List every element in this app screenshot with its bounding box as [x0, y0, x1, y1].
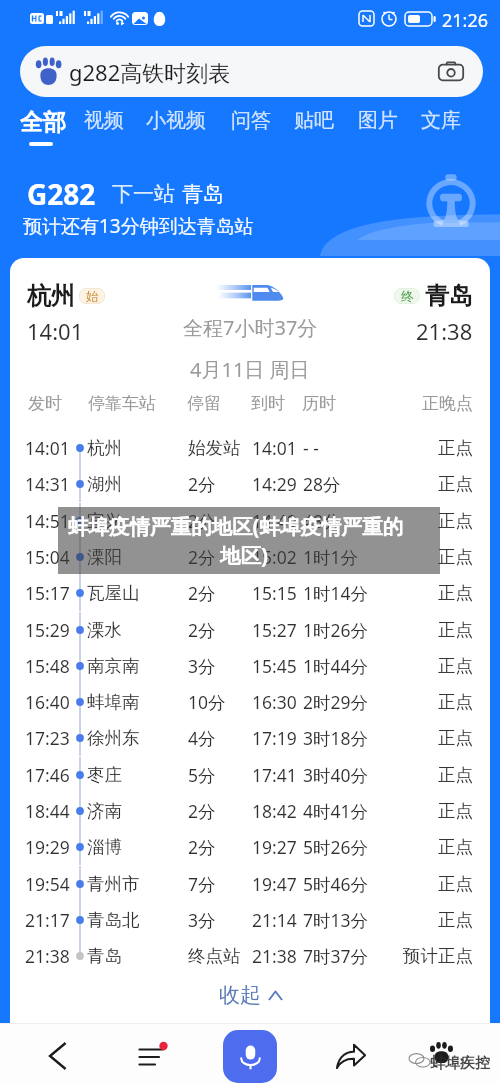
staticText: 21:14 — [252, 908, 297, 932]
staticText: 2分 — [188, 581, 216, 605]
button[interactable]: Visual search — [433, 54, 469, 90]
button[interactable]: 小视频 — [139, 104, 213, 148]
staticText: 4分 — [188, 726, 216, 750]
staticText: 正点 — [438, 437, 473, 459]
button[interactable]: Menu — [124, 1029, 180, 1083]
staticText: 溧阳 — [87, 546, 122, 568]
staticText: 正点 — [438, 836, 473, 858]
button[interactable]: 21:17 — [10, 902, 490, 938]
staticText: 15:02 — [252, 545, 297, 569]
staticText: 始发站 — [188, 437, 241, 459]
staticText: 19:47 — [252, 872, 297, 896]
staticText: 正晚点 — [422, 393, 473, 414]
staticText: 宜兴 — [87, 510, 122, 532]
button[interactable]: 19:54 — [10, 866, 490, 902]
staticText: 3分 — [188, 654, 216, 678]
button[interactable]: 15:04 — [10, 539, 490, 575]
staticText: 济南 — [87, 800, 122, 822]
staticText: 3分 — [188, 908, 216, 932]
staticText: 19:27 — [252, 835, 297, 859]
staticText: 蚌埠疾控 — [430, 1054, 490, 1073]
button[interactable]: 14:01 — [10, 430, 490, 466]
button[interactable]: 贴吧 — [287, 104, 341, 148]
staticText: 枣庄 — [87, 764, 122, 786]
staticText: 正点 — [438, 655, 473, 677]
staticText: 1时44分 — [303, 654, 369, 678]
staticText: 3时18分 — [303, 726, 369, 750]
staticText: 始 — [86, 288, 99, 304]
staticText: 2分 — [188, 472, 216, 496]
button[interactable]: 16:40 — [10, 684, 490, 720]
staticText: 4月11日 周日 — [190, 356, 310, 383]
button[interactable]: Voice search — [223, 1030, 277, 1083]
staticText: 5时26分 — [303, 835, 369, 859]
button[interactable]: Share — [323, 1029, 379, 1083]
staticText: 正点 — [438, 909, 473, 931]
staticText: 2分 — [188, 545, 216, 569]
staticText: 1时1分 — [303, 545, 359, 569]
staticText: 正点 — [438, 764, 473, 786]
staticText: 2时29分 — [303, 690, 369, 714]
button[interactable]: g282高铁时刻表 — [20, 46, 483, 97]
staticText: 15:48 — [25, 654, 70, 678]
staticText: 正点 — [438, 582, 473, 604]
button[interactable]: 14:31 — [10, 466, 490, 502]
button[interactable]: 问答 — [224, 104, 278, 148]
staticText: 杭州 — [27, 281, 75, 311]
staticText: 历时 — [302, 393, 336, 414]
button[interactable]: 图片 — [351, 104, 405, 148]
staticText: 正点 — [438, 619, 473, 641]
staticText: 15:15 — [252, 581, 297, 605]
button[interactable]: 15:17 — [10, 575, 490, 611]
button[interactable]: Baidu home — [414, 1031, 470, 1081]
staticText: 14:49 — [252, 509, 297, 533]
staticText: 17:46 — [25, 763, 70, 787]
staticText: 小视频 — [146, 108, 206, 133]
staticText: 正点 — [438, 473, 473, 495]
staticText: 7时37分 — [303, 944, 369, 968]
staticText: 2分 — [188, 618, 216, 642]
button[interactable]: 17:46 — [10, 757, 490, 793]
staticText: 文库 — [421, 108, 461, 133]
button[interactable]: 18:44 — [10, 793, 490, 829]
staticText: - - — [303, 436, 319, 460]
staticText: 19:29 — [25, 835, 70, 859]
staticText: 发时 — [28, 393, 62, 414]
button[interactable]: 15:29 — [10, 612, 490, 648]
staticText: 预计正点 — [403, 945, 473, 967]
button[interactable]: 17:23 — [10, 720, 490, 756]
staticText: 1时14分 — [303, 581, 369, 605]
staticText: 收起 — [219, 982, 261, 1008]
button[interactable]: 21:38 — [10, 938, 490, 974]
button[interactable]: 14:51 — [10, 503, 490, 539]
staticText: 21:26 — [442, 8, 489, 33]
button[interactable]: 15:48 — [10, 648, 490, 684]
button[interactable]: 全部 — [13, 104, 73, 148]
staticText: 地区) — [220, 541, 268, 569]
button[interactable]: 文库 — [414, 104, 468, 148]
staticText: 14:01 — [25, 436, 70, 460]
staticText: 青岛 — [425, 281, 473, 311]
staticText: 16:40 — [25, 690, 70, 714]
staticText: 17:41 — [252, 763, 297, 787]
staticText: 问答 — [231, 108, 271, 133]
staticText: 15:29 — [25, 618, 70, 642]
staticText: g282高铁时刻表 — [69, 57, 231, 87]
staticText: 2分 — [188, 799, 216, 823]
staticText: 预计还有13分钟到达青岛站 — [23, 213, 254, 239]
staticText: 青州市 — [87, 873, 140, 895]
staticText: 青岛 — [87, 945, 122, 967]
staticText: 21:38 — [416, 316, 473, 346]
button[interactable]: 19:29 — [10, 829, 490, 865]
staticText: 3时40分 — [303, 763, 369, 787]
staticText: 下一站 — [112, 181, 175, 207]
staticText: 正点 — [438, 691, 473, 713]
staticText: 15:17 — [25, 581, 70, 605]
button[interactable]: 视频 — [77, 104, 131, 148]
staticText: 全程7小时37分 — [183, 314, 318, 341]
button[interactable]: 收起 — [10, 978, 490, 1012]
staticText: 湖州 — [87, 473, 122, 495]
staticText: 21:38 — [25, 944, 70, 968]
button[interactable]: Back — [30, 1029, 86, 1083]
staticText: 终点站 — [188, 945, 241, 967]
